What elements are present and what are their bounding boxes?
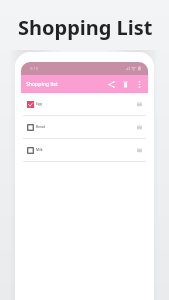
button[interactable]: Bread [21, 116, 148, 138]
button[interactable]: Delete [118, 77, 132, 91]
button[interactable]: Egg [21, 93, 148, 115]
button[interactable]: More options [132, 77, 146, 91]
staticText: Milk [36, 148, 43, 152]
staticText: Egg [36, 102, 42, 106]
staticText: 9:10 [30, 66, 38, 71]
button[interactable]: Milk [21, 139, 148, 161]
staticText: Shopping list [26, 81, 58, 88]
staticText: Shopping List [18, 14, 153, 41]
staticText: Bread [36, 125, 45, 129]
button[interactable]: Share [104, 77, 118, 91]
